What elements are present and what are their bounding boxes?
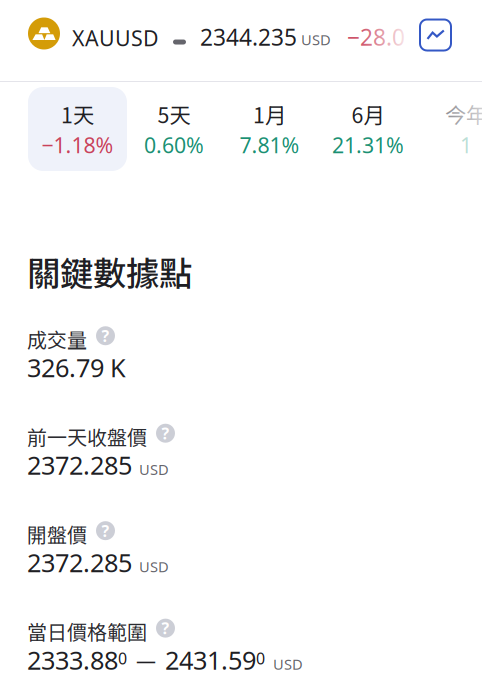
staticText: —	[136, 647, 156, 674]
staticText: ?	[161, 422, 169, 444]
button[interactable]: More info	[96, 326, 115, 345]
staticText: USD	[139, 459, 169, 479]
staticText: 2372.285	[27, 545, 132, 580]
staticText: 1天	[61, 98, 94, 129]
staticText: 5天	[157, 98, 190, 129]
button[interactable]: More info	[96, 521, 115, 540]
staticText: 2333.88	[27, 643, 118, 677]
staticText: 開盤價	[27, 519, 87, 548]
staticText: 2431.59	[165, 643, 256, 677]
staticText: 0.60%	[144, 130, 204, 159]
staticText: 關鍵數據點	[27, 247, 192, 295]
staticText: ?	[161, 617, 169, 639]
staticText: 前一天收盤價	[27, 422, 147, 451]
staticText: 2372.285	[27, 448, 132, 482]
staticText: USD	[139, 557, 169, 577]
staticText: 6月	[351, 98, 384, 129]
staticText: 成交量	[27, 324, 87, 353]
staticText: 21.31%	[332, 130, 404, 159]
staticText: ?	[101, 520, 109, 542]
staticText: −1.18%	[41, 130, 113, 159]
button[interactable]: 今年	[418, 87, 482, 171]
button[interactable]: Chart	[420, 19, 451, 50]
button[interactable]: More info	[156, 424, 175, 443]
staticText: 0	[118, 647, 127, 669]
staticText: 1月	[253, 98, 286, 129]
staticText: 1	[460, 130, 472, 159]
button[interactable]: More info	[156, 619, 175, 638]
button[interactable]: 1天	[28, 87, 127, 171]
staticText: 7.81%	[239, 130, 299, 159]
staticText: −28.0	[347, 22, 405, 52]
button[interactable]: 5天	[127, 87, 221, 171]
staticText: USD	[301, 29, 331, 49]
button[interactable]: 6月	[318, 87, 418, 171]
staticText: 今年	[445, 98, 482, 129]
staticText: 326.79	[27, 350, 104, 385]
button[interactable]: 1月	[221, 87, 318, 171]
staticText: 0	[256, 647, 265, 669]
staticText: XAUUSD	[72, 23, 159, 52]
staticText: 2344.235	[200, 22, 297, 52]
staticText: ?	[101, 325, 109, 347]
staticText: USD	[273, 654, 303, 674]
staticText: 當日價格範圍	[27, 617, 147, 646]
staticText: K	[110, 350, 126, 385]
